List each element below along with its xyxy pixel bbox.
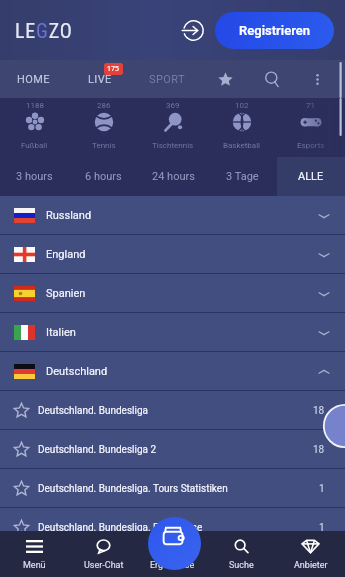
staticText: 18 <box>313 405 325 417</box>
staticText: Deutschland <box>46 365 108 378</box>
button[interactable]: 6 hours <box>69 157 138 196</box>
staticText: 286 <box>97 101 111 110</box>
button[interactable]: Anbieter <box>276 531 345 577</box>
button[interactable]: 3 hours <box>0 157 69 196</box>
staticText: Deutschland. Bundesliga <box>38 405 148 417</box>
staticText: 369 <box>166 101 180 110</box>
button[interactable]: Suche <box>249 60 295 98</box>
button[interactable]: 369 <box>138 98 207 157</box>
button[interactable]: LIVE <box>66 60 133 98</box>
button[interactable]: Ergebnisse <box>148 517 201 570</box>
button[interactable]: Deutschland. Bundesliga 2 <box>0 430 345 469</box>
button[interactable]: Suche <box>207 531 276 577</box>
staticText: England <box>46 248 86 261</box>
staticText: 1 <box>319 522 325 534</box>
staticText: Deutschland. Bundesliga. Tours Statistik… <box>38 483 228 495</box>
staticText: Suche <box>229 560 254 571</box>
staticText: 102 <box>235 101 249 110</box>
button[interactable]: HOME <box>0 60 66 98</box>
staticText: 71 <box>306 101 315 110</box>
button[interactable]: 286 <box>69 98 138 157</box>
staticText: Menü <box>23 560 46 571</box>
staticText: 1188 <box>26 101 44 110</box>
staticText: Registrieren <box>239 23 310 38</box>
button[interactable]: ALLE <box>277 157 345 196</box>
staticText: 1 <box>319 483 325 495</box>
staticText: Italien <box>46 326 76 339</box>
staticText: Spanien <box>46 287 86 300</box>
button[interactable]: England <box>0 235 345 274</box>
button[interactable]: Menü <box>0 531 69 577</box>
button[interactable]: Italien <box>0 313 345 352</box>
staticText: HOME <box>17 73 50 86</box>
button[interactable]: Anmelden <box>178 15 208 45</box>
button[interactable]: Mehr <box>295 60 339 98</box>
button[interactable]: Deutschland. Bundesliga <box>0 391 345 430</box>
button[interactable]: Registrieren <box>215 12 334 49</box>
button[interactable]: Deutschland <box>0 352 345 391</box>
button[interactable]: 71 <box>276 98 345 157</box>
staticText: Deutschland. Bundesliga 2 <box>38 444 157 456</box>
button[interactable]: 102 <box>207 98 276 157</box>
button[interactable]: Ergebnisse <box>138 531 207 577</box>
button[interactable]: SPORT <box>133 60 201 98</box>
staticText: Ergebnisse <box>150 560 195 571</box>
staticText: Esports <box>297 141 325 150</box>
button[interactable]: User-Chat <box>69 531 138 577</box>
staticText: Basketball <box>223 141 261 150</box>
staticText: User-Chat <box>84 560 124 571</box>
button[interactable]: Spanien <box>0 274 345 313</box>
button[interactable]: Favoriten <box>201 60 249 98</box>
staticText: LEGZO <box>15 19 73 42</box>
staticText: LIVE <box>88 73 112 86</box>
button[interactable]: 24 hours <box>138 157 208 196</box>
staticText: SPORT <box>149 73 185 86</box>
button[interactable]: 1188 <box>0 98 69 157</box>
staticText: 175 <box>107 64 120 74</box>
staticText: Tischtennis <box>152 141 194 150</box>
button[interactable]: 3 Tage <box>208 157 277 196</box>
button[interactable]: Deutschland. Bundesliga. Tours Statistik… <box>0 469 345 508</box>
staticText: Fußball <box>21 141 48 150</box>
staticText: 24 hours <box>152 170 195 183</box>
staticText: 3 Tage <box>226 170 259 183</box>
staticText: 18 <box>313 444 325 456</box>
staticText: Tennis <box>92 141 116 150</box>
staticText: Deutschland. Bundesliga. Ergebnisse <box>38 522 203 534</box>
staticText: Anbieter <box>294 560 328 571</box>
button[interactable]: Deutschland. Bundesliga. Ergebnisse <box>0 508 345 547</box>
button[interactable]: Russland <box>0 196 345 235</box>
staticText: 6 hours <box>85 170 122 183</box>
staticText: ALLE <box>298 170 324 183</box>
staticText: 3 hours <box>16 170 53 183</box>
staticText: Russland <box>46 209 92 222</box>
